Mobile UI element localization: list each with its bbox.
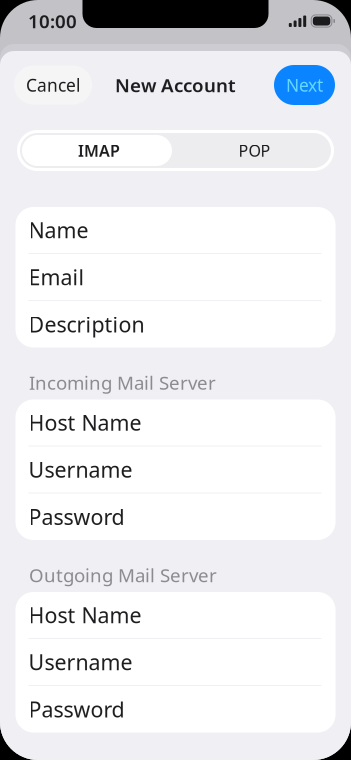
staticText: Cancel (26, 73, 80, 96)
button[interactable]: Host Name (15, 399, 335, 446)
staticText: Email (28, 263, 84, 291)
button[interactable]: Description (15, 301, 335, 347)
staticText: Username (28, 648, 132, 676)
staticText: New Account (115, 73, 236, 97)
staticText: Name (28, 216, 88, 244)
staticText: Password (28, 503, 124, 531)
button[interactable]: POP (178, 133, 331, 168)
staticText: POP (238, 140, 270, 161)
button[interactable]: Name (15, 207, 335, 254)
button[interactable]: IMAP (20, 133, 178, 168)
button[interactable]: Host Name (15, 592, 335, 639)
staticText: Username (28, 455, 132, 484)
staticText: Next (286, 73, 323, 96)
button[interactable]: Cancel (14, 65, 92, 104)
button[interactable]: Next (274, 65, 335, 105)
button[interactable]: Email (15, 254, 335, 301)
staticText: IMAP (78, 140, 120, 161)
staticText: Incoming Mail Server (29, 370, 216, 395)
staticText: Host Name (28, 601, 141, 629)
staticText: 10:00 (28, 9, 77, 33)
staticText: Password (28, 695, 124, 723)
staticText: Outgoing Mail Server (29, 563, 217, 587)
button[interactable]: Username (15, 639, 335, 686)
button[interactable]: Username (15, 446, 335, 493)
button[interactable]: Password (15, 686, 335, 732)
staticText: Host Name (28, 408, 141, 437)
staticText: Description (28, 310, 144, 338)
button[interactable]: Password (15, 493, 335, 540)
